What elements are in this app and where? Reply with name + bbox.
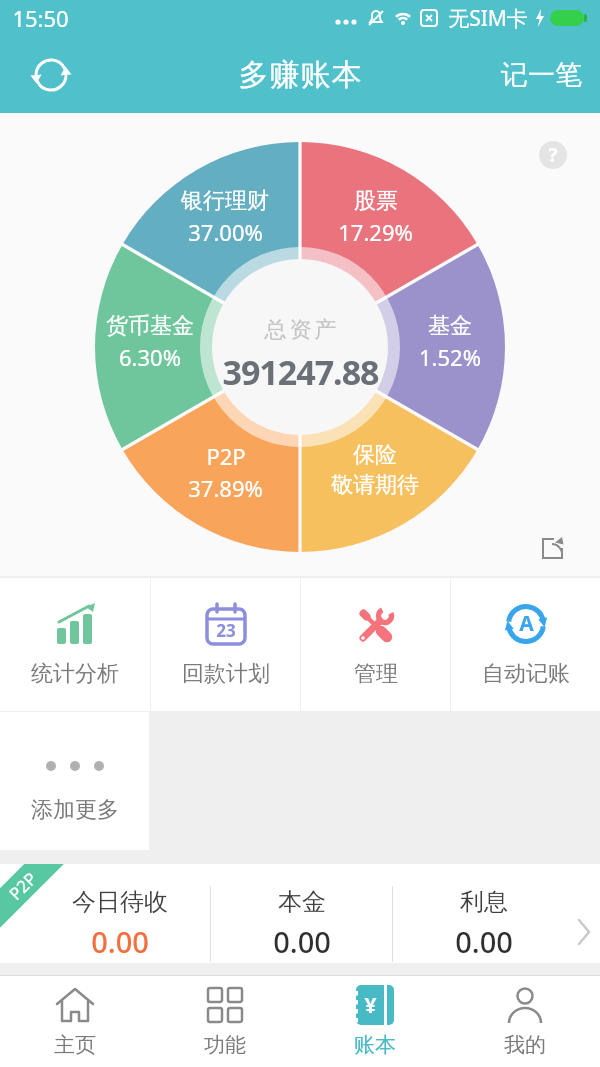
button[interactable]: A (451, 578, 600, 711)
staticText: 1.52% (419, 342, 481, 370)
staticText: 管理 (354, 660, 398, 688)
button[interactable]: 功能 (150, 976, 300, 1067)
staticText: 敬请期待 (331, 471, 419, 499)
staticText: 今日待收 (72, 887, 168, 917)
staticText: 功能 (204, 1032, 246, 1058)
staticText: 银行理财 (181, 187, 269, 215)
staticText: 23 (216, 619, 236, 642)
staticText: 37.00% (188, 217, 263, 245)
staticText: 0.00 (455, 922, 513, 961)
staticText: A (519, 609, 534, 638)
button[interactable] (538, 533, 568, 563)
staticText: 多赚账本 (238, 56, 362, 94)
staticText: 统计分析 (31, 660, 119, 688)
staticText: 回款计划 (182, 660, 270, 688)
staticText: 15:50 (12, 3, 69, 33)
staticText: 6.30% (119, 342, 181, 370)
staticText: 自动记账 (482, 660, 570, 688)
button[interactable]: 23 (151, 578, 300, 711)
button[interactable]: 统计分析 (0, 578, 150, 711)
staticText: 货币基金 (106, 312, 194, 340)
staticText: 基金 (428, 312, 472, 340)
staticText: 主页 (54, 1032, 96, 1058)
staticText: 无SIM卡 (448, 4, 528, 33)
button[interactable]: 我的 (450, 976, 600, 1067)
staticText: 保险 (353, 441, 397, 469)
button[interactable]: ? (539, 141, 567, 169)
staticText: 391247.88 (222, 349, 379, 393)
staticText: ¥ (364, 991, 377, 1020)
staticText: 我的 (504, 1032, 546, 1058)
staticText: P2P (4, 867, 42, 905)
button[interactable]: ¥ (300, 976, 450, 1067)
button[interactable]: 主页 (0, 976, 150, 1067)
button[interactable] (28, 52, 74, 98)
button[interactable]: 管理 (301, 578, 450, 711)
button[interactable]: 记一笔 (501, 58, 582, 92)
staticText: 账本 (354, 1032, 396, 1058)
staticText: 17.29% (338, 217, 413, 245)
staticText: 总资产 (263, 316, 338, 344)
staticText: 股票 (354, 187, 398, 215)
staticText: P2P (206, 441, 246, 471)
staticText: 添加更多 (31, 796, 119, 824)
staticText: 0.00 (273, 922, 331, 961)
staticText: 本金 (278, 887, 326, 917)
staticText: ? (548, 142, 558, 168)
button[interactable]: 今日待收 (0, 864, 600, 963)
staticText: 利息 (460, 887, 508, 917)
staticText: 记一笔 (501, 58, 582, 92)
button[interactable]: 添加更多 (0, 712, 149, 850)
staticText: 0.00 (91, 922, 149, 961)
staticText: 37.89% (188, 473, 263, 499)
